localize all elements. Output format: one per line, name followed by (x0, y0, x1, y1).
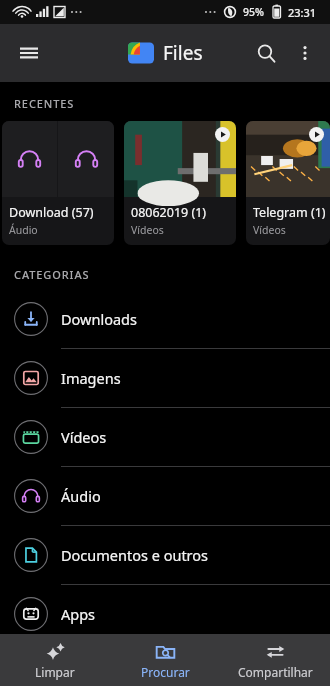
button[interactable]: Telegram (1) (246, 121, 330, 245)
button[interactable]: More options (286, 34, 324, 72)
staticText: Files (163, 40, 203, 66)
button[interactable]: 08062019 (1) (124, 121, 236, 245)
staticText: RECENTES (14, 96, 75, 111)
staticText: Documentos e outros (61, 545, 209, 565)
staticText: 23:31 (288, 5, 317, 20)
staticText: Procurar (141, 664, 190, 680)
staticText: Limpar (35, 664, 75, 680)
staticText: Compartilhar (238, 664, 313, 680)
staticText: Áudio (9, 223, 38, 237)
button[interactable]: Imagens (0, 349, 330, 407)
button[interactable]: Search (246, 33, 286, 73)
staticText: Imagens (61, 368, 121, 388)
button[interactable]: Limpar (0, 634, 110, 686)
button[interactable]: Procurar (110, 634, 220, 686)
button[interactable]: Apps (0, 585, 330, 643)
staticText: Apps (61, 604, 96, 624)
staticText: Vídeos (131, 223, 164, 237)
staticText: 08062019 (1) (131, 204, 207, 221)
button[interactable]: Áudio (0, 467, 330, 525)
button[interactable]: Open navigation drawer (10, 34, 48, 72)
staticText: Áudio (61, 486, 101, 506)
staticText: 95% (243, 5, 264, 19)
staticText: Vídeos (61, 427, 107, 447)
button[interactable]: Downloads (0, 290, 330, 348)
staticText: CATEGORIAS (14, 267, 90, 282)
button[interactable]: Compartilhar (220, 634, 330, 686)
button[interactable]: Download (57) (2, 121, 114, 245)
staticText: Vídeos (253, 223, 286, 237)
staticText: Telegram (1) (253, 204, 326, 221)
staticText: Download (57) (9, 204, 94, 221)
button[interactable]: Vídeos (0, 408, 330, 466)
staticText: Downloads (61, 309, 137, 329)
button[interactable]: Documentos e outros (0, 526, 330, 584)
